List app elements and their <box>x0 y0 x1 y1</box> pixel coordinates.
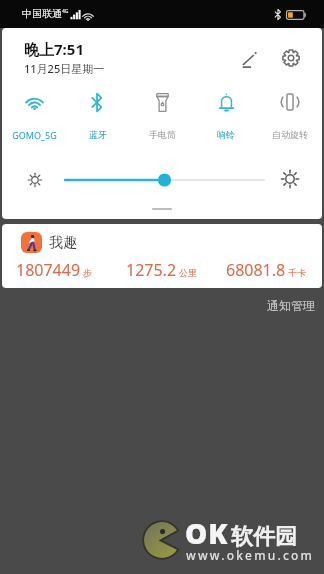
button[interactable]: 通知管理 <box>253 294 324 317</box>
staticText: 68081.8 <box>226 259 286 281</box>
staticText: 千卡 <box>288 267 306 278</box>
staticText: 自动旋转 <box>272 129 308 140</box>
staticText: 公里 <box>179 267 197 278</box>
staticText: 4G <box>62 8 69 15</box>
staticText: 中国联通 <box>22 7 62 20</box>
staticText: GOMO_5G <box>12 129 57 141</box>
staticText: www.okemu.com <box>186 547 315 563</box>
staticText: 晚上7:51 <box>24 39 84 59</box>
staticText: 我趣 <box>49 234 77 252</box>
button[interactable]: 手电筒 <box>130 88 194 150</box>
button[interactable] <box>58 170 271 190</box>
button[interactable]: GOMO_5G <box>2 88 66 150</box>
button[interactable]: 蓝牙 <box>66 88 130 150</box>
staticText: OK <box>185 514 229 552</box>
staticText: 软件园 <box>231 523 297 551</box>
staticText: 响铃 <box>217 129 235 140</box>
button[interactable]: Settings <box>275 42 307 74</box>
button[interactable]: Edit <box>233 43 265 75</box>
staticText: 手电筒 <box>149 129 176 140</box>
button[interactable]: 自动旋转 <box>258 88 322 150</box>
staticText: 1807449 <box>16 259 81 281</box>
button[interactable]: 我趣 <box>2 224 322 288</box>
staticText: 通知管理 <box>267 298 315 313</box>
staticText: 11月25日星期一 <box>24 61 105 76</box>
staticText: 步 <box>83 267 92 278</box>
button[interactable]: 响铃 <box>194 88 258 150</box>
staticText: 1275.2 <box>126 259 177 281</box>
staticText: 蓝牙 <box>89 129 107 140</box>
